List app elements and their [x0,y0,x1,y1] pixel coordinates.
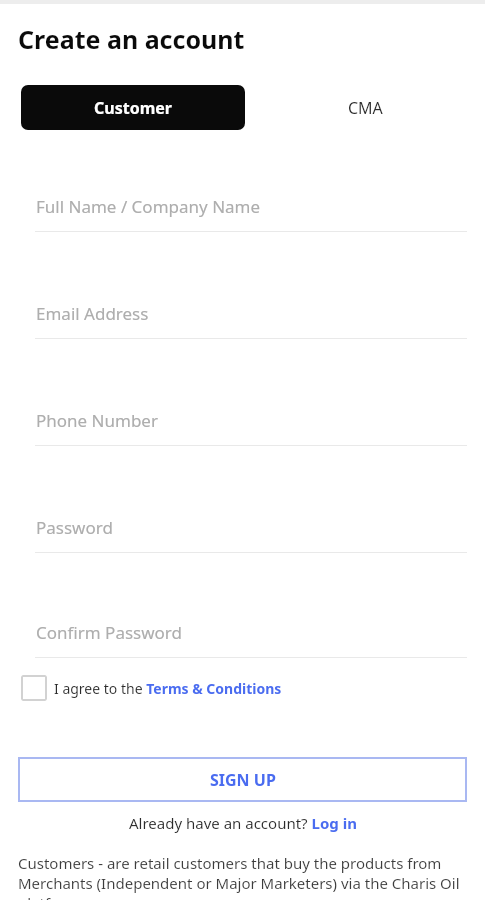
button[interactable]: Phone Number [0,387,485,446]
staticText: Create an account [18,22,245,56]
staticText: Customer [94,97,172,119]
button[interactable]: Already have an account? Log in [0,813,485,833]
button[interactable]: Password [0,494,485,553]
staticText: Full Name / Company Name [36,195,261,218]
staticText: Email Address [36,302,149,325]
staticText: Customers - are retail customers that bu… [18,853,465,900]
button[interactable]: CMA [245,85,485,130]
button[interactable]: Full Name / Company Name [0,173,485,232]
button[interactable]: SIGN UP [18,757,467,802]
staticText: SIGN UP [210,769,276,791]
staticText: I agree to the Terms & Conditions [54,679,282,698]
staticText: Already have an account? Log in [129,813,357,833]
staticText: Phone Number [36,409,158,432]
staticText: Password [36,516,113,539]
staticText: Confirm Password [36,621,182,644]
button[interactable]: I agree to the Terms & Conditions [21,675,485,701]
button[interactable]: Confirm Password [0,599,485,658]
button[interactable]: Customer [21,85,245,130]
button[interactable]: Email Address [0,280,485,339]
staticText: CMA [348,97,383,119]
